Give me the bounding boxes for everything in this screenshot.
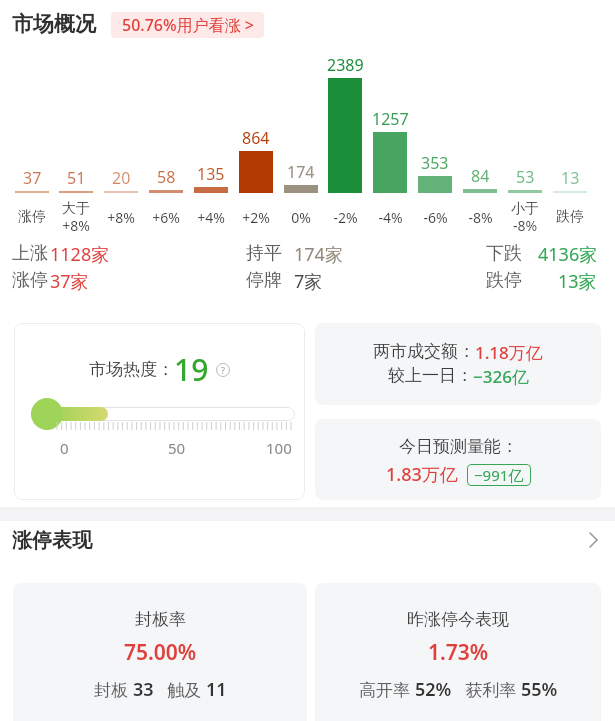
- staticText: 封板率: [135, 609, 186, 630]
- staticText: 864: [242, 127, 270, 148]
- staticText: 75.00%: [124, 638, 197, 667]
- staticText: 11: [206, 677, 227, 702]
- staticText: 跌停: [486, 269, 522, 292]
- staticText: 50.76%用户看涨 >: [122, 14, 254, 36]
- button[interactable]: 两市成交额：: [315, 323, 601, 405]
- staticText: 市场热度：: [89, 359, 174, 380]
- staticText: 37家: [50, 269, 89, 294]
- staticText: 7家: [294, 269, 323, 294]
- staticText: 174家: [294, 242, 343, 267]
- staticText: 2389: [327, 54, 364, 75]
- staticText: −991亿: [474, 465, 524, 485]
- staticText: 174: [287, 161, 315, 182]
- staticText: +4%: [197, 208, 225, 227]
- button[interactable]: 今日预测量能：: [315, 419, 601, 500]
- staticText: -2%: [333, 208, 358, 227]
- staticText: 84: [471, 165, 490, 186]
- staticText: 135: [197, 163, 225, 184]
- staticText: 获利率: [452, 678, 521, 701]
- button[interactable]: 50.76%用户看涨 >: [111, 12, 264, 38]
- staticText: 涨停: [18, 208, 46, 226]
- staticText: 0%: [291, 208, 311, 227]
- staticText: 上涨: [12, 242, 48, 265]
- staticText: 1.18万亿: [475, 341, 543, 364]
- staticText: 市场概况: [12, 11, 96, 37]
- staticText: 小于 -8%: [511, 200, 539, 235]
- staticText: 13: [561, 167, 580, 188]
- staticText: 涨停表现: [12, 528, 92, 553]
- staticText: 高开率: [359, 678, 415, 701]
- staticText: 两市成交额：: [373, 341, 475, 362]
- staticText: 13家: [558, 269, 597, 294]
- staticText: 跌停: [556, 208, 584, 226]
- staticText: 53: [516, 166, 535, 187]
- staticText: 下跌: [486, 242, 522, 265]
- staticText: 353: [421, 152, 449, 173]
- staticText: 1257: [372, 108, 409, 129]
- staticText: 4136家: [538, 242, 598, 267]
- staticText: 51: [67, 167, 86, 188]
- staticText: 100: [266, 438, 292, 458]
- staticText: 1128家: [50, 242, 110, 267]
- staticText: 58: [157, 166, 176, 187]
- staticText: −326亿: [473, 365, 529, 388]
- staticText: -4%: [378, 208, 403, 227]
- staticText: -8%: [468, 208, 493, 227]
- staticText: 0: [60, 438, 69, 458]
- staticText: 1.73%: [428, 638, 489, 667]
- staticText: 涨停: [12, 269, 48, 292]
- staticText: +2%: [242, 208, 270, 227]
- staticText: +8%: [107, 208, 135, 227]
- staticText: 55%: [521, 677, 558, 702]
- staticText: 今日预测量能：: [399, 436, 518, 457]
- staticText: 持平: [246, 242, 282, 265]
- staticText: 19: [174, 349, 209, 390]
- staticText: 50: [168, 438, 186, 458]
- staticText: 33: [133, 677, 154, 702]
- button[interactable]: 封板率: [13, 583, 307, 721]
- staticText: -6%: [423, 208, 448, 227]
- button[interactable]: 昨涨停今表现: [315, 583, 601, 721]
- staticText: 大于 +8%: [62, 200, 90, 235]
- button[interactable]: 涨停表现: [0, 524, 615, 556]
- button[interactable]: 市场热度：: [14, 323, 305, 500]
- staticText: 封板: [94, 678, 133, 701]
- staticText: 昨涨停今表现: [407, 609, 509, 630]
- staticText: +6%: [152, 208, 180, 227]
- staticText: 停牌: [246, 269, 282, 292]
- staticText: 37: [23, 167, 42, 188]
- staticText: 52%: [415, 677, 452, 702]
- staticText: ?: [221, 364, 225, 376]
- staticText: 1.83万亿: [386, 462, 458, 487]
- staticText: 触及: [154, 678, 206, 701]
- staticText: 20: [112, 167, 131, 188]
- staticText: 较上一日：: [388, 365, 473, 386]
